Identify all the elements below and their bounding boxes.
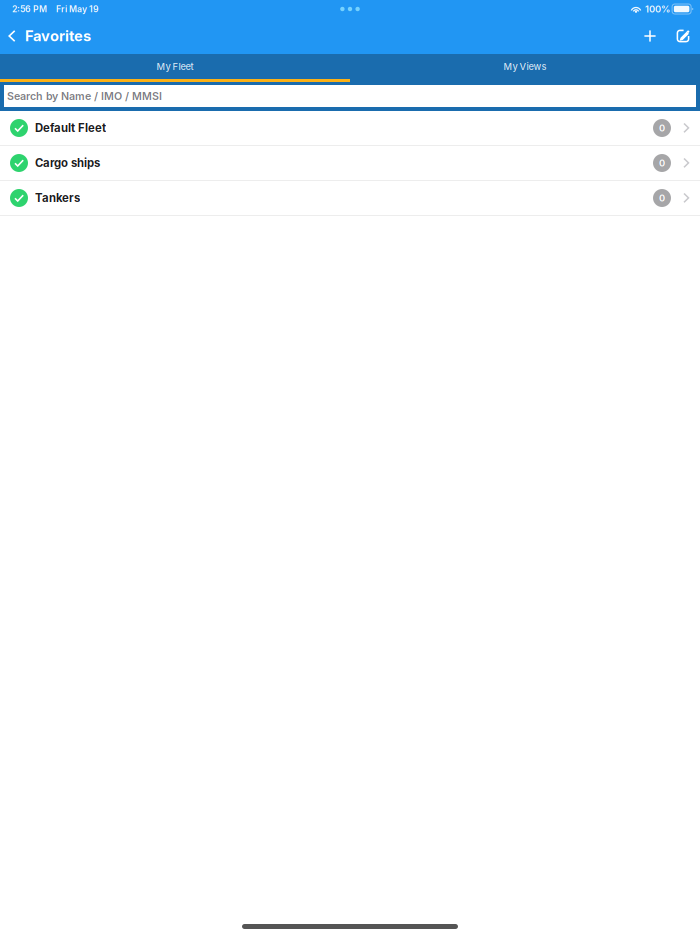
button[interactable]: Default Fleet — [0, 111, 700, 146]
button[interactable]: Tankers — [0, 181, 700, 216]
button[interactable]: My Fleet — [0, 54, 350, 82]
staticText: Favorites — [25, 27, 91, 45]
staticText: 0 — [659, 122, 665, 134]
button[interactable]: Compose — [669, 19, 697, 53]
staticText: Cargo ships — [35, 156, 100, 170]
staticText: Default Fleet — [35, 121, 106, 135]
staticText: 0 — [659, 192, 665, 204]
staticText: Tankers — [35, 191, 80, 205]
button[interactable]: Add — [636, 19, 664, 53]
staticText: Search by Name / IMO / MMSI — [7, 89, 162, 102]
button[interactable]: My Views — [350, 54, 700, 82]
staticText: Fri May 19 — [56, 4, 99, 14]
button[interactable]: Cargo ships — [0, 146, 700, 181]
staticText: My Fleet — [156, 61, 193, 72]
staticText: My Views — [503, 61, 546, 72]
staticText: 2:56 PM — [12, 4, 47, 14]
staticText: 100% — [645, 3, 670, 15]
button[interactable]: Back — [2, 19, 22, 53]
staticText: 0 — [659, 157, 665, 169]
